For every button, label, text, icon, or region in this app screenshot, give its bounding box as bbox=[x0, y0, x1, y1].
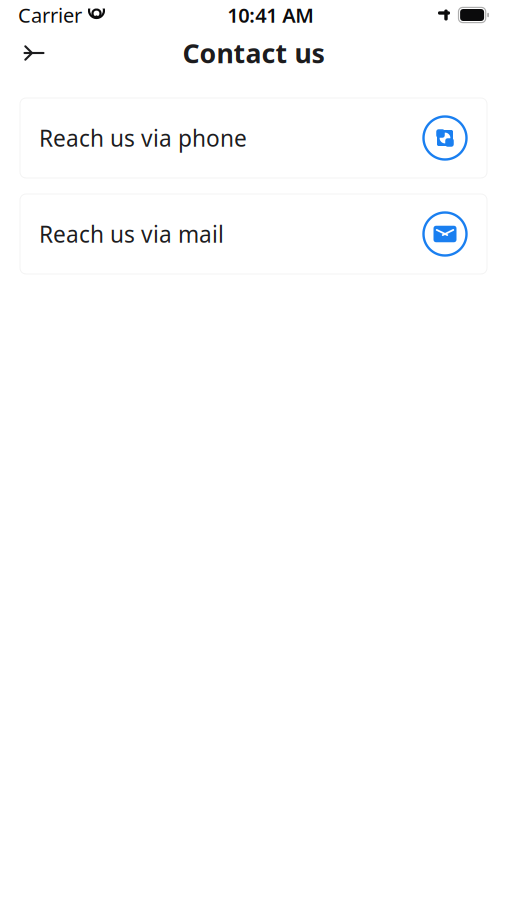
staticText: Reach us via phone bbox=[39, 123, 247, 153]
button[interactable]: Back bbox=[12, 31, 56, 75]
staticText: Carrier bbox=[18, 2, 82, 28]
button[interactable]: Reach us via phone bbox=[20, 98, 487, 178]
staticText: Contact us bbox=[182, 35, 324, 71]
button[interactable]: Reach us via mail bbox=[20, 194, 487, 274]
staticText: Reach us via mail bbox=[39, 219, 224, 249]
staticText: 10:41 AM bbox=[227, 2, 314, 28]
